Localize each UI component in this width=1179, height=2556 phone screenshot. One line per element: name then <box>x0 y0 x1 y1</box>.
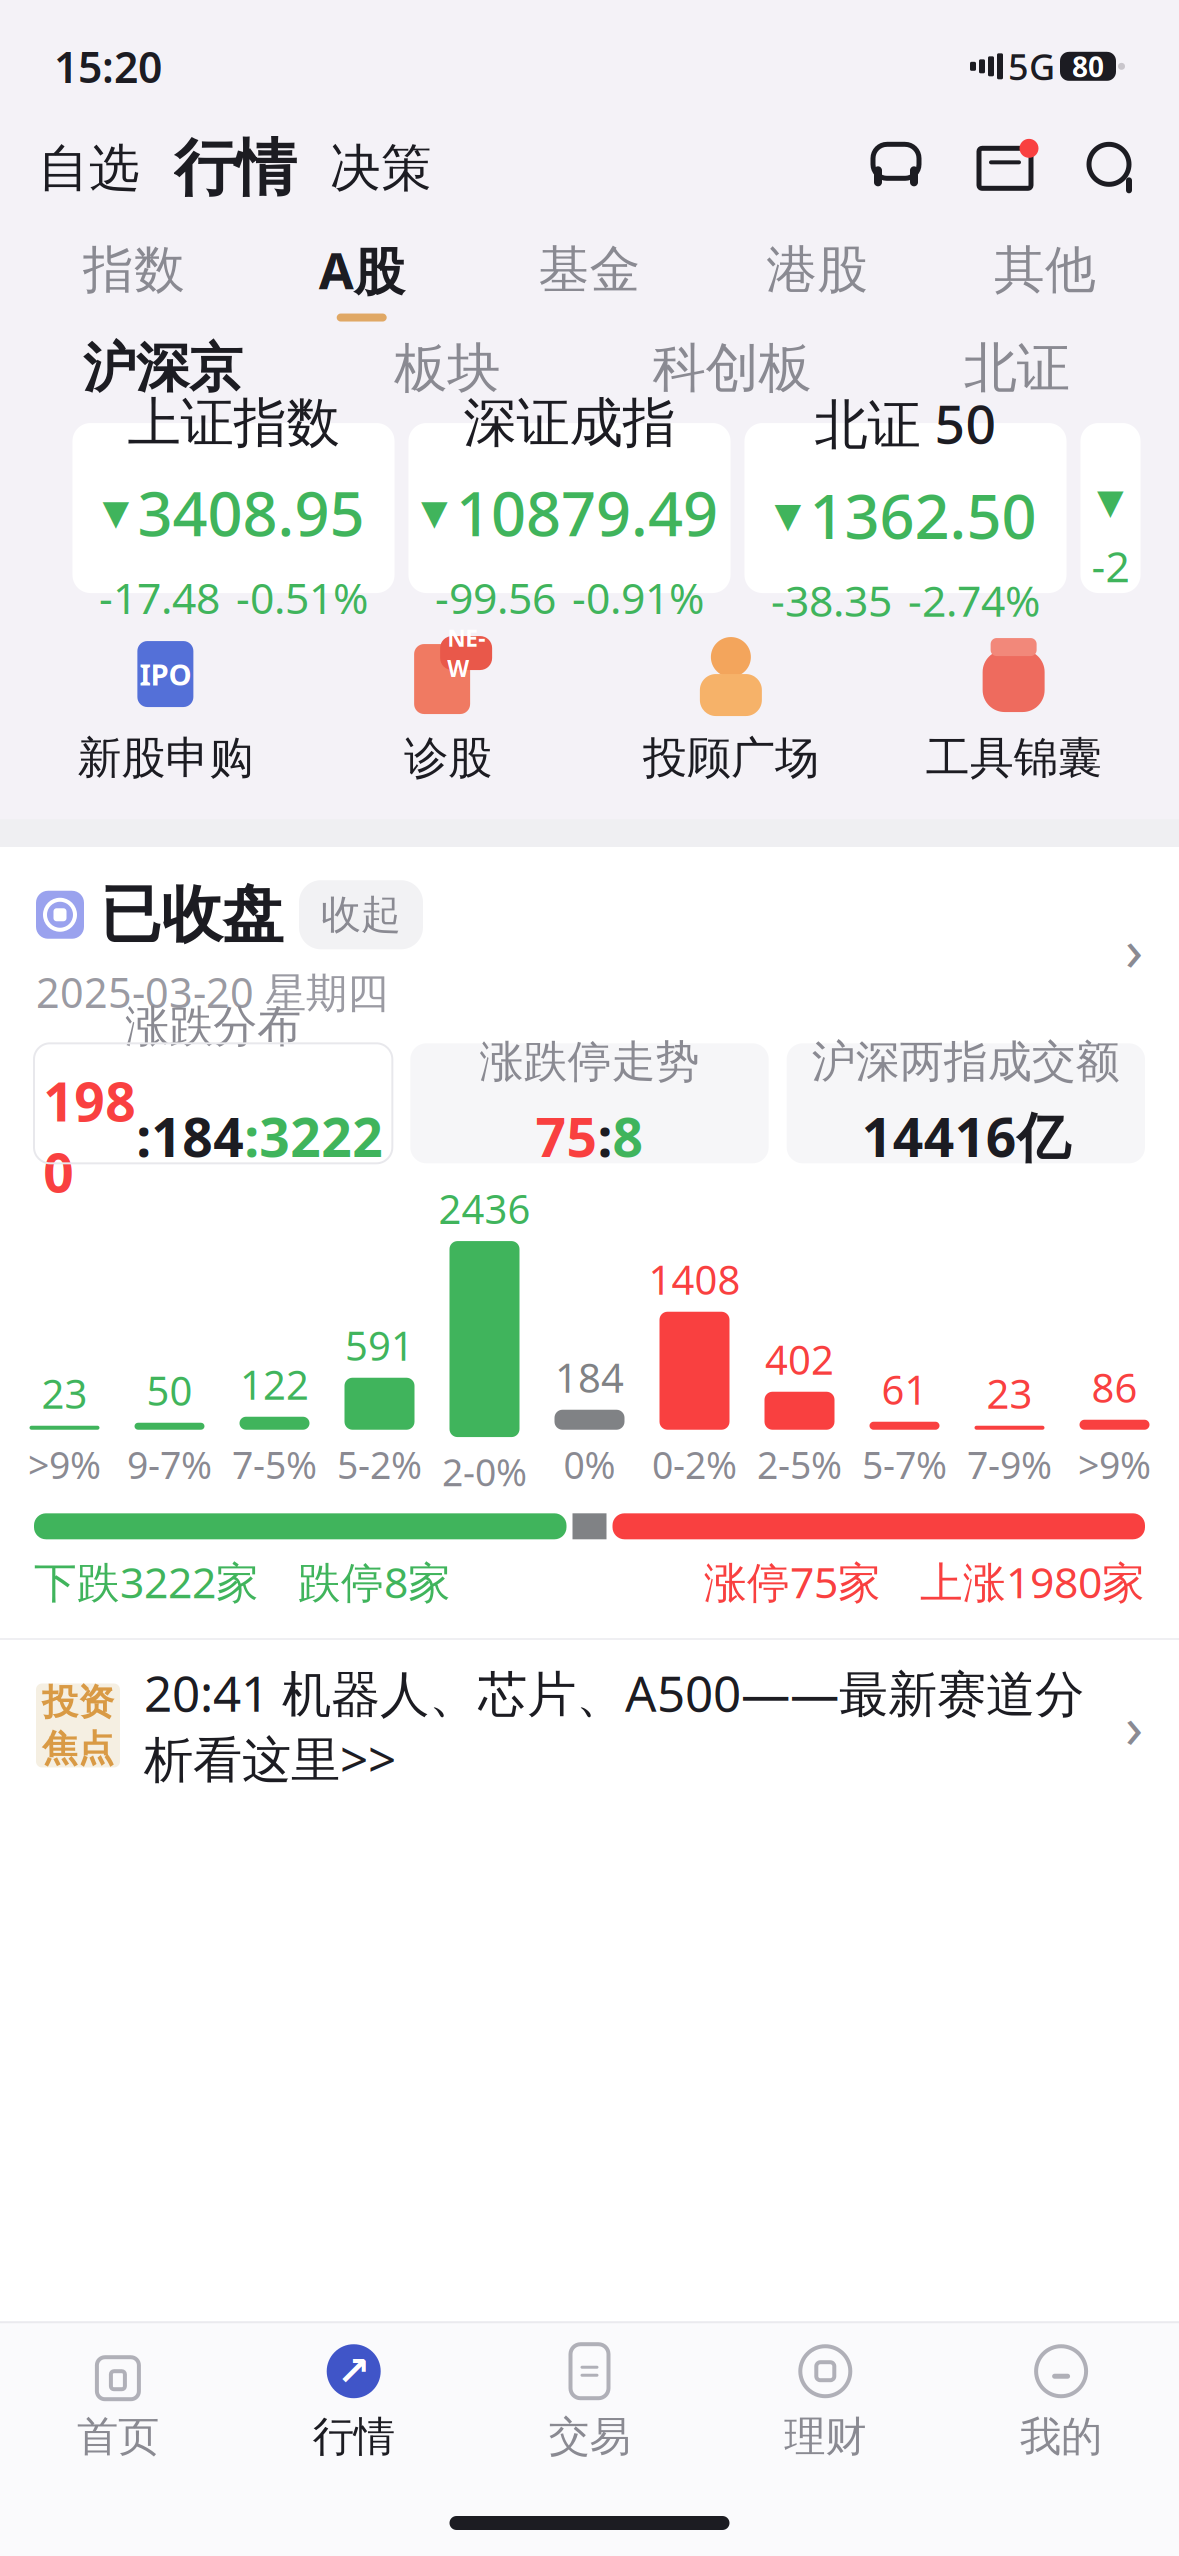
staticText: 5-7% <box>862 1440 947 1489</box>
staticText: 自选 <box>38 137 140 199</box>
staticText: -38.35 <box>771 572 892 629</box>
button[interactable]: 北证 <box>874 335 1159 401</box>
button[interactable]: 指数 <box>20 239 248 319</box>
button[interactable]: 搜索 <box>1035 140 1141 196</box>
staticText: : <box>597 1101 612 1172</box>
staticText: 上证指数 <box>127 390 339 456</box>
button[interactable]: 科创板 <box>589 335 874 401</box>
staticText: 14416亿 <box>862 1101 1070 1172</box>
staticText: : <box>244 1101 259 1172</box>
staticText: 首页 <box>77 2411 159 2462</box>
staticText: 7-9% <box>967 1440 1052 1489</box>
staticText: 北证 50 <box>814 388 996 458</box>
staticText: 投资 <box>42 1680 114 1724</box>
staticText: 61 <box>881 1363 927 1416</box>
staticText: 板块 <box>394 335 500 401</box>
button[interactable]: 北证 50 <box>744 423 1066 593</box>
button[interactable]: 决策 <box>296 137 432 199</box>
staticText: 涨跌停走势 <box>479 1035 699 1089</box>
button[interactable]: 投顾广场 <box>589 631 872 785</box>
staticText: >9% <box>1078 1440 1151 1489</box>
staticText: -0.91% <box>572 569 704 626</box>
staticText: 2-0% <box>442 1447 527 1497</box>
staticText: -2 <box>1091 537 1129 594</box>
staticText: 2-5% <box>757 1440 842 1489</box>
button[interactable]: 行情 <box>140 131 296 206</box>
button[interactable]: 消息 <box>925 139 1035 197</box>
staticText: 50 <box>146 1364 192 1417</box>
staticText: 行情 <box>313 2411 395 2462</box>
button[interactable]: 交易 <box>472 2341 707 2462</box>
staticText: 3222 <box>259 1101 383 1172</box>
staticText: 下跌3222家 跌停8家 <box>34 1553 451 1610</box>
staticText: 涨停75家 上涨1980家 <box>704 1553 1145 1610</box>
staticText: ↗ <box>337 2348 371 2394</box>
staticText: 涨跌分布 <box>125 999 301 1053</box>
staticText: 2025-03-20 星期四 <box>36 964 388 1019</box>
button[interactable]: 上证指数 <box>72 423 394 593</box>
staticText: › <box>1125 909 1143 987</box>
button[interactable]: 基金 <box>476 239 703 319</box>
staticText: 我的 <box>1020 2411 1102 2462</box>
staticText: 15:20 <box>54 38 162 95</box>
button[interactable]: 港股 <box>703 239 931 319</box>
button[interactable]: 已收盘 <box>0 847 1179 1043</box>
staticText: 3408.95 <box>137 472 364 553</box>
button[interactable]: 板块 <box>305 335 590 401</box>
staticText: 8 <box>612 1101 643 1172</box>
staticText: 行情 <box>174 131 296 206</box>
button[interactable]: 深证成指 <box>408 423 730 593</box>
staticText: 科创板 <box>652 335 811 401</box>
button[interactable]: ↗ <box>236 2341 472 2462</box>
button[interactable]: 沪深京 <box>20 335 305 401</box>
button[interactable]: 我的 <box>943 2341 1179 2462</box>
staticText: 20:41 机器人、芯片、A500——最新赛道分析看这里>> <box>144 1660 1084 1791</box>
button[interactable]: 其他 <box>931 239 1159 319</box>
staticText: 基金 <box>538 239 640 301</box>
button[interactable]: 涨跌停走势 <box>410 1043 769 1163</box>
staticText: 2436 <box>438 1182 530 1235</box>
staticText: 沪深两指成交额 <box>812 1035 1120 1089</box>
staticText: 75 <box>535 1101 597 1172</box>
staticText: 投顾广场 <box>643 731 819 785</box>
staticText: 焦点 <box>42 1726 114 1771</box>
staticText: 指数 <box>83 239 185 301</box>
staticText: 184 <box>555 1351 624 1404</box>
staticText: 1362.50 <box>809 474 1036 556</box>
staticText: 23 <box>986 1367 1032 1420</box>
staticText: ▼ <box>421 493 448 532</box>
button[interactable]: 投资 <box>0 1638 1179 1813</box>
staticText: 80 <box>1072 48 1104 85</box>
staticText: 收起 <box>321 890 401 939</box>
staticText: 新股申购 <box>77 731 253 785</box>
staticText: 深证成指 <box>463 390 675 456</box>
button[interactable]: 首页 <box>0 2341 236 2462</box>
staticText: 5-2% <box>337 1440 422 1489</box>
staticText: 10879.49 <box>456 472 718 553</box>
staticText: ▼ <box>774 495 801 535</box>
staticText: 1408 <box>648 1253 740 1306</box>
staticText: 591 <box>345 1319 414 1372</box>
staticText: 理财 <box>784 2411 866 2462</box>
button[interactable]: 客服 <box>867 139 925 197</box>
staticText: 其他 <box>994 239 1096 301</box>
staticText: › <box>1125 1686 1143 1764</box>
button[interactable]: 涨跌分布 <box>34 1043 392 1163</box>
button[interactable]: NEW <box>307 631 590 785</box>
staticText: >9% <box>28 1440 101 1489</box>
staticText: 诊股 <box>404 731 492 785</box>
staticText: -17.48 <box>99 569 220 626</box>
staticText: 0-2% <box>652 1440 737 1489</box>
staticText: 工具锦囊 <box>926 731 1102 785</box>
staticText: 9-7% <box>127 1440 212 1489</box>
button[interactable]: A股 <box>248 236 476 321</box>
staticText: -2.74% <box>908 572 1040 629</box>
button[interactable]: 自选 <box>38 137 140 199</box>
button[interactable]: 沪深两指成交额 <box>787 1043 1145 1163</box>
staticText: IPO <box>139 655 191 694</box>
staticText: 交易 <box>548 2411 630 2462</box>
staticText: 港股 <box>766 239 868 301</box>
button[interactable]: 理财 <box>707 2341 943 2462</box>
button[interactable]: IPO <box>24 631 307 785</box>
button[interactable]: 工具锦囊 <box>872 631 1155 785</box>
